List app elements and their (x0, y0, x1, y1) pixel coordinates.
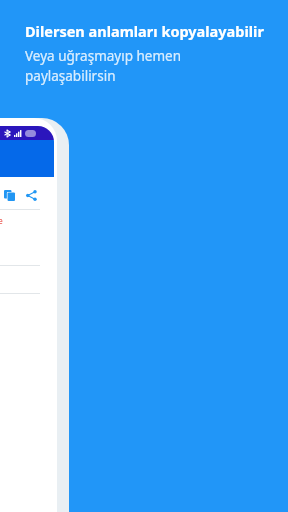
staticText: raya göre ce, yazı (0, 215, 3, 237)
staticText: Veya uğraşmayıp hemen paylaşabilirsin (25, 47, 182, 85)
staticText: Dilersen anlamları kopyalayabilir (25, 21, 264, 41)
button[interactable]: Kopyala (1, 187, 18, 204)
button[interactable]: Paylaş (23, 187, 40, 204)
